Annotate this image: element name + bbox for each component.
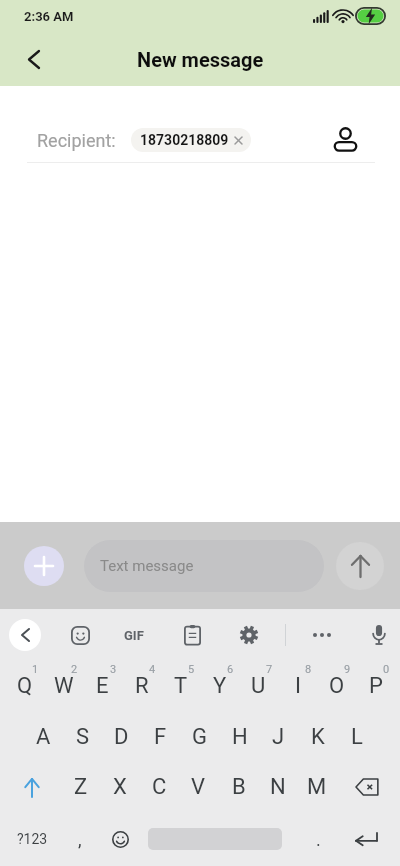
staticText: M: [307, 774, 327, 800]
staticText: A: [36, 724, 51, 750]
staticText: X: [113, 774, 127, 800]
staticText: ,: [78, 829, 82, 850]
staticText: K: [311, 724, 325, 750]
staticText: 0: [383, 663, 390, 676]
staticText: B: [232, 774, 246, 800]
button[interactable]: K: [298, 714, 337, 760]
staticText: C: [152, 774, 167, 800]
button[interactable]: C: [140, 764, 179, 810]
staticText: ?123: [17, 831, 48, 847]
button[interactable]: W: [44, 663, 83, 709]
staticText: J: [272, 724, 285, 750]
button[interactable]: G: [180, 714, 219, 760]
staticText: 5: [188, 663, 195, 676]
staticText: S: [76, 724, 90, 750]
button[interactable]: [359, 615, 399, 655]
button[interactable]: B: [219, 764, 258, 810]
button[interactable]: D: [102, 714, 141, 760]
staticText: R: [135, 673, 149, 699]
staticText: 3: [110, 663, 117, 676]
button[interactable]: Z: [61, 764, 100, 810]
staticText: I: [295, 673, 301, 699]
staticText: Y: [213, 673, 227, 699]
button[interactable]: J: [259, 714, 298, 760]
staticText: E: [96, 673, 109, 699]
button[interactable]: X: [100, 764, 139, 810]
button[interactable]: [8, 765, 56, 809]
button[interactable]: [302, 615, 342, 655]
staticText: GIF: [124, 628, 144, 643]
staticText: Recipient:: [37, 130, 116, 151]
staticText: P: [369, 673, 383, 699]
staticText: D: [114, 724, 129, 750]
staticText: .: [316, 829, 321, 850]
button[interactable]: [172, 615, 212, 655]
staticText: 7: [266, 663, 273, 676]
staticText: 6: [227, 663, 234, 676]
button[interactable]: Y: [200, 663, 239, 709]
button[interactable]: F: [141, 714, 180, 760]
staticText: Q: [17, 673, 33, 699]
button[interactable]: P: [356, 663, 395, 709]
button[interactable]: A: [24, 714, 63, 760]
staticText: 8: [305, 663, 312, 676]
staticText: Z: [74, 774, 88, 800]
button[interactable]: S: [63, 714, 102, 760]
button[interactable]: ,: [64, 817, 96, 861]
button[interactable]: [9, 619, 41, 651]
staticText: F: [154, 724, 167, 750]
button[interactable]: [344, 817, 388, 861]
button[interactable]: [336, 542, 384, 590]
button[interactable]: [24, 546, 64, 586]
staticText: 2: [71, 663, 78, 676]
button[interactable]: L: [337, 714, 376, 760]
staticText: G: [192, 724, 207, 750]
button[interactable]: H: [220, 714, 259, 760]
staticText: U: [251, 673, 266, 699]
staticText: Text message: [100, 557, 194, 575]
button[interactable]: [325, 120, 365, 160]
button[interactable]: U: [239, 663, 278, 709]
button[interactable]: Text message: [84, 540, 324, 592]
button[interactable]: I: [278, 663, 317, 709]
button[interactable]: [343, 765, 391, 809]
button[interactable]: ?123: [9, 817, 55, 861]
button[interactable]: E: [83, 663, 122, 709]
staticText: V: [191, 774, 206, 800]
button[interactable]: .: [303, 817, 333, 861]
staticText: H: [232, 724, 248, 750]
staticText: 4: [149, 663, 156, 676]
staticText: L: [351, 724, 363, 750]
staticText: T: [174, 673, 188, 699]
button[interactable]: V: [179, 764, 218, 810]
button[interactable]: GIF: [114, 615, 154, 655]
button[interactable]: O: [317, 663, 356, 709]
button[interactable]: N: [258, 764, 297, 810]
staticText: N: [270, 774, 286, 800]
staticText: New message: [137, 48, 264, 71]
staticText: O: [329, 673, 345, 699]
button[interactable]: [104, 817, 136, 861]
button[interactable]: R: [122, 663, 161, 709]
button[interactable]: [229, 615, 269, 655]
button[interactable]: T: [161, 663, 200, 709]
staticText: 18730218809: [140, 132, 229, 148]
button[interactable]: M: [297, 764, 336, 810]
staticText: 1: [32, 663, 39, 676]
button[interactable]: [16, 41, 52, 77]
staticText: 2:36 AM: [24, 9, 74, 24]
staticText: W: [54, 673, 74, 699]
staticText: 9: [344, 663, 351, 676]
button[interactable]: 18730218809: [131, 128, 251, 152]
button[interactable]: [60, 615, 100, 655]
button[interactable]: Q: [5, 663, 44, 709]
